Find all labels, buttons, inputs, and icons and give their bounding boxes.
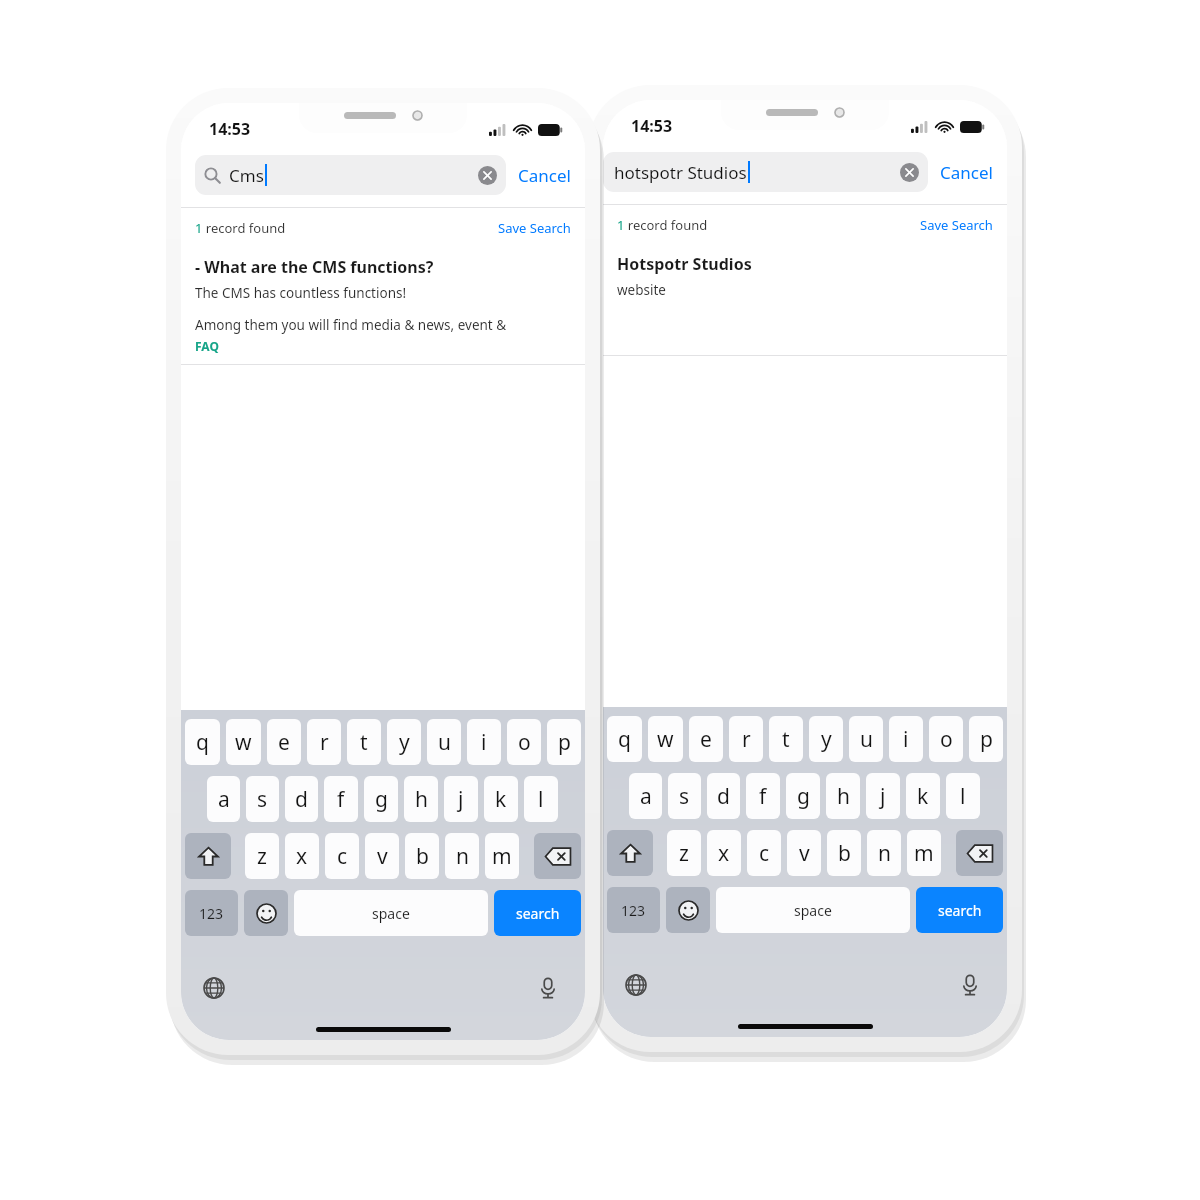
- staticText: x: [296, 842, 308, 871]
- button[interactable]: g: [786, 773, 820, 819]
- button[interactable]: n: [867, 830, 901, 876]
- button[interactable]: d: [707, 773, 740, 819]
- button[interactable]: Shift: [607, 830, 653, 876]
- button[interactable]: 123: [185, 890, 238, 936]
- button[interactable]: z: [667, 830, 701, 876]
- button[interactable]: n: [445, 833, 479, 879]
- button[interactable]: b: [405, 833, 439, 879]
- button[interactable]: 123: [607, 887, 660, 933]
- button[interactable]: t: [347, 719, 381, 765]
- button[interactable]: o: [507, 719, 541, 765]
- button[interactable]: i: [467, 719, 501, 765]
- staticText: h: [415, 785, 428, 814]
- button[interactable]: u: [427, 719, 461, 765]
- button[interactable]: j: [444, 776, 478, 822]
- button[interactable]: Emoji: [244, 890, 288, 936]
- button[interactable]: v: [365, 833, 399, 879]
- button[interactable]: k: [484, 776, 518, 822]
- button[interactable]: Dictation: [531, 971, 565, 1005]
- button[interactable]: x: [285, 833, 319, 879]
- staticText: g: [375, 785, 388, 814]
- button[interactable]: Shift: [185, 833, 231, 879]
- staticText: Hotspotr Studios: [617, 253, 752, 275]
- button[interactable]: q: [185, 719, 220, 765]
- button[interactable]: y: [809, 716, 843, 762]
- staticText: p: [980, 725, 993, 754]
- button[interactable]: l: [524, 776, 558, 822]
- button[interactable]: e: [689, 716, 723, 762]
- button[interactable]: space: [294, 890, 488, 936]
- staticText: m: [492, 842, 512, 871]
- button[interactable]: h: [826, 773, 860, 819]
- button[interactable]: p: [969, 716, 1003, 762]
- staticText: Among them you will find media & news, e…: [195, 316, 507, 334]
- button[interactable]: e: [267, 719, 301, 765]
- staticText: d: [295, 785, 308, 814]
- button[interactable]: Change keyboard: [619, 968, 653, 1002]
- button[interactable]: Dictation: [953, 968, 987, 1002]
- button[interactable]: Save Search: [920, 216, 993, 234]
- button[interactable]: a: [629, 773, 662, 819]
- staticText: r: [320, 728, 329, 757]
- button[interactable]: Backspace: [534, 833, 581, 879]
- button[interactable]: r: [307, 719, 341, 765]
- button[interactable]: Emoji: [666, 887, 710, 933]
- button[interactable]: Cancel: [516, 158, 573, 193]
- button[interactable]: c: [325, 833, 359, 879]
- staticText: o: [940, 725, 953, 754]
- button[interactable]: Backspace: [956, 830, 1003, 876]
- button[interactable]: z: [245, 833, 279, 879]
- button[interactable]: o: [929, 716, 963, 762]
- button[interactable]: u: [849, 716, 883, 762]
- button[interactable]: search: [916, 887, 1003, 933]
- staticText: v: [799, 839, 810, 868]
- staticText: x: [718, 839, 730, 868]
- staticText: Cancel: [518, 164, 571, 187]
- button[interactable]: m: [485, 833, 519, 879]
- staticText: 1 record found: [195, 219, 286, 237]
- button[interactable]: f: [746, 773, 780, 819]
- staticText: - What are the CMS functions?: [195, 256, 434, 278]
- button[interactable]: Clear search: [900, 163, 919, 182]
- staticText: q: [618, 725, 631, 754]
- button[interactable]: t: [769, 716, 803, 762]
- button[interactable]: r: [729, 716, 763, 762]
- button[interactable]: space: [716, 887, 910, 933]
- button[interactable]: g: [364, 776, 398, 822]
- button[interactable]: v: [787, 830, 821, 876]
- button[interactable]: s: [246, 776, 279, 822]
- button[interactable]: Clear search: [478, 166, 497, 185]
- button[interactable]: p: [547, 719, 581, 765]
- button[interactable]: s: [668, 773, 701, 819]
- button[interactable]: q: [607, 716, 642, 762]
- button[interactable]: h: [404, 776, 438, 822]
- button[interactable]: c: [747, 830, 781, 876]
- button[interactable]: m: [907, 830, 941, 876]
- staticText: d: [717, 782, 730, 811]
- button[interactable]: l: [946, 773, 980, 819]
- staticText: w: [657, 725, 674, 754]
- button[interactable]: d: [285, 776, 318, 822]
- button[interactable]: y: [387, 719, 421, 765]
- button[interactable]: j: [866, 773, 900, 819]
- button[interactable]: a: [207, 776, 240, 822]
- button[interactable]: x: [707, 830, 741, 876]
- staticText: 14:53: [209, 118, 251, 140]
- button[interactable]: Change keyboard: [197, 971, 231, 1005]
- button[interactable]: b: [827, 830, 861, 876]
- button[interactable]: Cancel: [938, 155, 995, 190]
- button[interactable]: hotspotr Studios: [603, 152, 928, 192]
- button[interactable]: Save Search: [498, 219, 571, 237]
- button[interactable]: Cms: [195, 155, 506, 195]
- staticText: m: [914, 839, 934, 868]
- staticText: n: [878, 839, 891, 868]
- button[interactable]: w: [648, 716, 683, 762]
- button[interactable]: k: [906, 773, 940, 819]
- button[interactable]: i: [889, 716, 923, 762]
- button[interactable]: w: [226, 719, 261, 765]
- button[interactable]: f: [324, 776, 358, 822]
- button[interactable]: Hotspotr Studios: [603, 245, 1007, 313]
- staticText: i: [481, 728, 487, 757]
- button[interactable]: - What are the CMS functions?: [181, 248, 585, 364]
- button[interactable]: search: [494, 890, 581, 936]
